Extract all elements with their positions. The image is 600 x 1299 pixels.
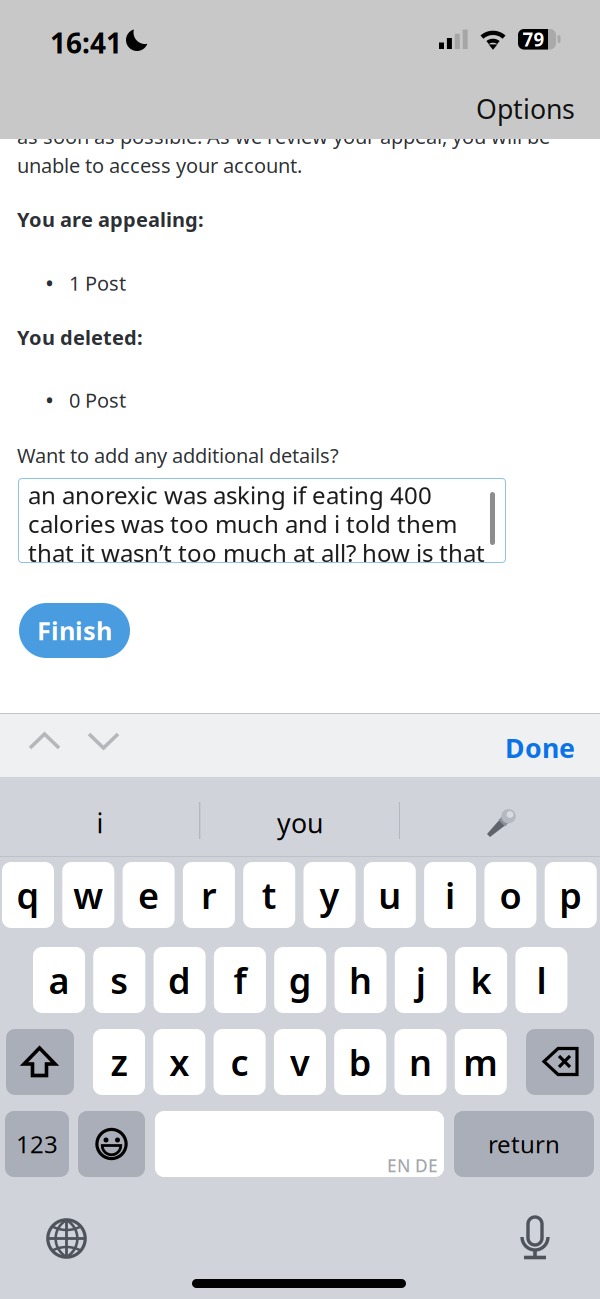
staticText: t [262,871,277,919]
button[interactable]: Next field [86,731,121,751]
staticText: Finish [37,614,112,647]
button[interactable]: m [455,1029,507,1095]
staticText: q [16,871,39,919]
staticText: 1 Post [54,270,126,296]
staticText: e [138,871,159,919]
button[interactable]: n [394,1029,446,1095]
staticText: v [290,1038,310,1086]
button[interactable] [78,1111,145,1177]
staticText: x [169,1038,189,1086]
staticText: calories was too much and i told them [28,508,457,540]
staticText: f [233,956,246,1004]
button[interactable]: Space [155,1111,444,1177]
staticText: • [45,384,54,416]
staticText: z [110,1038,127,1086]
button[interactable]: c [214,1029,266,1095]
button[interactable]: a [33,947,85,1013]
staticText: a [48,956,69,1004]
button[interactable]: g [274,947,326,1013]
staticText: n [409,1038,432,1086]
staticText: unable to access your account. [17,152,302,179]
button[interactable]: 123 [5,1111,69,1177]
staticText: i [445,871,455,919]
button[interactable]: i [0,791,200,855]
button[interactable]: Finish [19,603,130,658]
button[interactable]: t [243,862,295,928]
button[interactable]: Previous field [27,731,62,751]
staticText: u [378,871,401,919]
staticText: You deleted: [17,324,143,351]
button[interactable]: k [455,947,507,1013]
staticText: s [110,956,128,1004]
button[interactable]: e [123,862,175,928]
button[interactable]: p [545,862,597,928]
staticText: i [96,805,103,841]
button[interactable]: o [484,862,536,928]
staticText: g [289,956,312,1004]
button[interactable]: q [2,862,54,928]
staticText: You are appealing: [17,206,204,233]
staticText: p [559,871,582,919]
staticText: l [536,956,546,1004]
staticText: b [349,1038,372,1086]
staticText: k [471,956,492,1004]
button[interactable]: z [93,1029,145,1095]
staticText: return [488,1128,560,1160]
staticText: m [463,1038,498,1086]
button[interactable]: b [334,1029,386,1095]
button[interactable]: x [153,1029,205,1095]
staticText: 123 [16,1128,58,1160]
staticText: Want to add any additional details? [17,442,339,469]
staticText: Done [505,730,575,765]
staticText: you [277,805,323,841]
staticText: c [231,1038,249,1086]
button[interactable]: i [424,862,476,928]
staticText: • [45,267,54,299]
button[interactable]: Dictate [514,1212,558,1262]
staticText: h [349,956,372,1004]
staticText: Options [476,91,575,126]
button[interactable]: d [154,947,206,1013]
staticText: that it wasn’t too much at all? how is t… [28,537,485,569]
staticText: 16:41 [50,24,122,61]
button[interactable] [526,1029,594,1095]
staticText: w [73,871,103,919]
staticText: r [201,871,217,919]
staticText: j [416,956,426,1004]
button[interactable]: h [334,947,386,1013]
staticText: y [319,871,339,919]
button[interactable]: s [93,947,145,1013]
button[interactable]: Dictate [400,791,600,855]
button[interactable]: Options [476,91,575,126]
button[interactable]: u [364,862,416,928]
button[interactable]: y [303,862,355,928]
button[interactable]: j [395,947,447,1013]
staticText: EN DE [387,1154,438,1177]
staticText: an anorexic was asking if eating 400 [28,479,432,511]
button[interactable]: return [454,1111,594,1177]
staticText: o [499,871,521,919]
button[interactable]: w [62,862,114,928]
button[interactable]: Switch keyboard [46,1218,87,1259]
button[interactable]: you [200,791,400,855]
button[interactable] [6,1029,74,1095]
staticText: as soon as possible. As we review your a… [17,123,550,150]
button[interactable]: v [274,1029,326,1095]
button[interactable]: l [515,947,567,1013]
button[interactable]: f [214,947,266,1013]
staticText: d [168,956,191,1004]
staticText: 79 [522,27,544,52]
staticText: 0 Post [54,387,126,413]
button[interactable]: r [183,862,235,928]
button[interactable]: Done [505,730,575,765]
